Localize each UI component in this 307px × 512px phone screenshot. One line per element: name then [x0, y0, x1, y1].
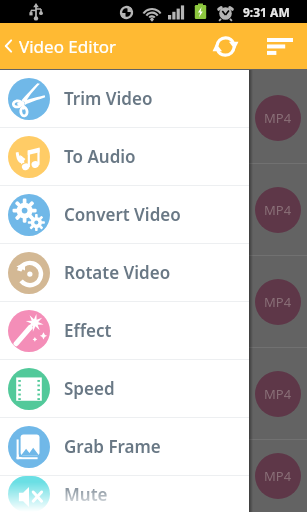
staticText: MP4 — [264, 293, 292, 311]
button[interactable]: MP4 — [249, 348, 307, 439]
staticText: Grab Frame — [64, 435, 161, 458]
button[interactable]: Mute — [0, 476, 249, 512]
button[interactable]: Convert Video — [0, 186, 249, 243]
button[interactable]: Refresh — [202, 23, 249, 69]
staticText: Mute — [64, 483, 108, 506]
staticText: To Audio — [64, 145, 136, 168]
button[interactable]: MP4 — [249, 164, 307, 255]
button[interactable]: Effect — [0, 302, 249, 359]
button[interactable]: To Audio — [0, 128, 249, 185]
button[interactable]: Rotate Video — [0, 244, 249, 301]
staticText: Convert Video — [64, 203, 181, 226]
staticText: Rotate Video — [64, 261, 171, 284]
button[interactable]: Sort — [257, 23, 303, 69]
staticText: Effect — [64, 319, 112, 342]
button[interactable]: Speed — [0, 360, 249, 417]
button[interactable]: Video Editor — [0, 23, 125, 69]
staticText: 9:31 AM — [243, 4, 290, 20]
staticText: Speed — [64, 377, 115, 400]
staticText: MP4 — [264, 201, 292, 219]
staticText: MP4 — [264, 385, 292, 403]
button[interactable]: Trim Video — [0, 70, 249, 127]
staticText: Video Editor — [19, 35, 117, 58]
staticText: Trim Video — [64, 87, 153, 110]
staticText: MP4 — [264, 109, 292, 127]
staticText: MP4 — [264, 467, 292, 485]
button[interactable]: Grab Frame — [0, 418, 249, 475]
button[interactable]: MP4 — [249, 72, 307, 163]
button[interactable]: MP4 — [249, 256, 307, 347]
button[interactable]: MP4 — [249, 440, 307, 512]
